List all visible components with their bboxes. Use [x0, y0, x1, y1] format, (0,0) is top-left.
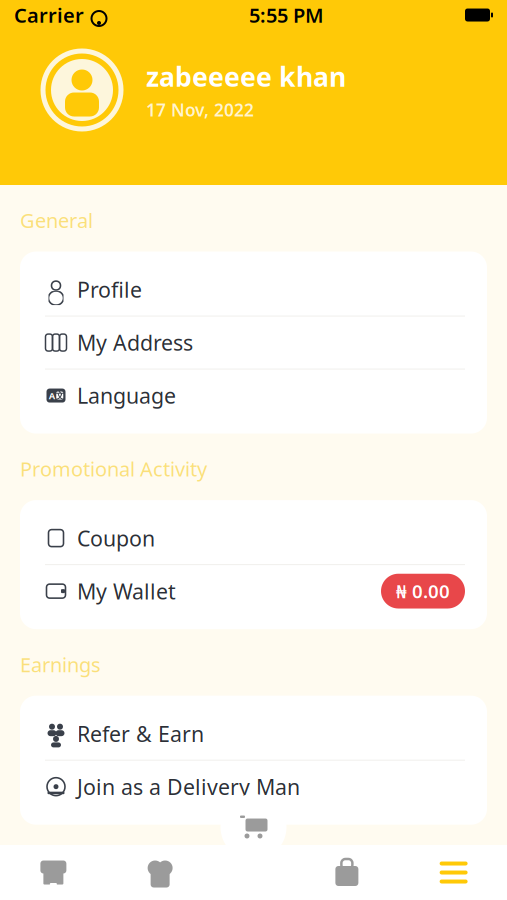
button[interactable]: Cart: [218, 792, 288, 862]
staticText: Earnings: [20, 651, 101, 678]
button[interactable]: Refer & Earn: [20, 708, 487, 761]
staticText: 5:55 PM: [249, 2, 324, 28]
staticText: General: [20, 207, 93, 234]
button[interactable]: Favourites: [107, 845, 214, 900]
staticText: Refer & Earn: [77, 719, 204, 748]
button[interactable]: Join as a Delivery Man: [20, 761, 487, 813]
staticText: Language: [77, 381, 176, 410]
staticText: 17 Nov, 2022: [146, 98, 254, 121]
staticText: Join as a Delivery Man: [77, 772, 300, 801]
button[interactable]: Menu: [400, 845, 507, 900]
button[interactable]: Coupon: [20, 512, 487, 565]
staticText: Promotional Activity: [20, 456, 207, 482]
button[interactable]: My Wallet: [20, 565, 487, 617]
staticText: A: [49, 389, 55, 402]
staticText: ₦ 0.00: [396, 579, 450, 603]
button[interactable]: My Address: [20, 317, 487, 370]
staticText: Coupon: [77, 524, 155, 552]
button[interactable]: Orders: [293, 845, 400, 900]
button[interactable]: Profile: [20, 264, 487, 317]
staticText: My Address: [77, 328, 193, 357]
staticText: 文: [55, 390, 64, 401]
staticText: My Wallet: [77, 577, 176, 605]
staticText: Carrier: [14, 2, 84, 28]
button[interactable]: A: [20, 370, 487, 422]
staticText: zabeeeee khan: [146, 59, 346, 94]
staticText: Profile: [77, 275, 142, 304]
button[interactable]: Home: [0, 845, 107, 900]
